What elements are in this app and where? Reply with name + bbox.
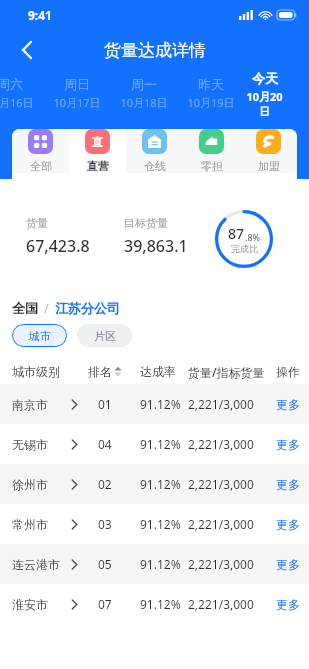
button[interactable]: 片区 (77, 324, 132, 347)
staticText: 直营 (87, 159, 109, 173)
button[interactable]: 加盟 (240, 129, 297, 173)
staticText: 39,863.1 (124, 235, 188, 257)
staticText: 03 (98, 516, 112, 532)
staticText: 67,423.8 (26, 235, 90, 257)
staticText: 91.12% (140, 476, 181, 492)
button[interactable]: 无锡市 (0, 424, 309, 464)
staticText: 周一 (131, 76, 157, 92)
staticText: 排名 (88, 364, 112, 379)
staticText: 91.12% (140, 596, 181, 612)
staticText: 2,221/3,000 (188, 436, 254, 452)
staticText: 05 (98, 556, 112, 572)
button[interactable]: 更多 (276, 517, 300, 532)
staticText: 2,221/3,000 (188, 396, 254, 412)
button[interactable]: 全国 (12, 300, 38, 316)
button[interactable]: 更多 (276, 437, 300, 452)
staticText: 昨天 (198, 76, 224, 92)
other: Expand 南京市 (66, 396, 82, 412)
other: Expand 无锡市 (66, 436, 82, 452)
staticText: 10月16日 (0, 95, 34, 110)
other: Expand 淮安市 (66, 596, 82, 612)
staticText: 更多 (276, 517, 300, 532)
button[interactable]: 徐州市 (0, 464, 309, 504)
button[interactable]: 常州市 (0, 504, 309, 544)
button[interactable]: 今天 (244, 70, 285, 116)
staticText: 货量 (26, 216, 48, 230)
staticText: 城市 (29, 329, 51, 343)
button[interactable]: 更多 (276, 597, 300, 612)
staticText: 04 (98, 436, 112, 452)
staticText: 更多 (276, 597, 300, 612)
button[interactable]: 更多 (276, 397, 300, 412)
staticText: 今天 (252, 70, 278, 86)
staticText: 02 (98, 476, 112, 492)
other: Expand 徐州市 (66, 476, 82, 492)
button[interactable]: 直 (69, 129, 126, 173)
staticText: 全国 (12, 300, 38, 316)
staticText: 零担 (201, 159, 223, 173)
staticText: 连云港市 (12, 557, 60, 572)
staticText: 2,221/3,000 (188, 596, 254, 612)
staticText: 9:41 (28, 7, 52, 23)
staticText: 淮安市 (12, 597, 48, 612)
staticText: 91.12% (140, 556, 181, 572)
button[interactable]: 周日 (43, 76, 110, 110)
staticText: 全部 (30, 159, 52, 173)
staticText: 城市级别 (12, 364, 60, 379)
button[interactable]: 周一 (110, 76, 177, 110)
button[interactable]: 更多 (276, 557, 300, 572)
staticText: 更多 (276, 557, 300, 572)
staticText: .8% (245, 231, 261, 243)
staticText: 2,221/3,000 (188, 476, 254, 492)
staticText: 江苏分公司 (55, 300, 120, 316)
button[interactable]: 昨天 (177, 76, 244, 110)
staticText: 货量达成详情 (104, 40, 206, 61)
staticText: 91.12% (140, 396, 181, 412)
staticText: 加盟 (258, 159, 280, 173)
staticText: 完成比 (231, 243, 258, 254)
staticText: 2,221/3,000 (188, 516, 254, 532)
button[interactable]: 连云港市 (0, 544, 309, 584)
button[interactable]: 江苏分公司 (55, 300, 120, 316)
staticText: 07 (98, 596, 112, 612)
staticText: 操作 (276, 364, 300, 379)
staticText: 10月20日 (244, 89, 285, 116)
staticText: 直 (92, 135, 103, 149)
staticText: 常州市 (12, 517, 48, 532)
button[interactable]: 排名 (88, 364, 122, 379)
staticText: 91.12% (140, 516, 181, 532)
staticText: 仓线 (144, 159, 166, 173)
button[interactable]: 仓线 (126, 129, 183, 173)
staticText: 10月17日 (53, 95, 101, 110)
button[interactable]: 周六 (0, 76, 43, 110)
staticText: 10月18日 (120, 95, 168, 110)
other: Expand 连云港市 (66, 556, 82, 572)
staticText: 10月19日 (187, 95, 235, 110)
staticText: 更多 (276, 477, 300, 492)
other: Expand 常州市 (66, 516, 82, 532)
staticText: 更多 (276, 397, 300, 412)
staticText: 2,221/3,000 (188, 556, 254, 572)
button[interactable]: 全部 (12, 129, 69, 173)
staticText: / (38, 300, 55, 316)
staticText: 徐州市 (12, 477, 48, 492)
staticText: 达成率 (140, 364, 176, 379)
button[interactable]: 零担 (183, 129, 240, 173)
button[interactable]: 南京市 (0, 384, 309, 424)
staticText: 南京市 (12, 397, 48, 412)
staticText: 更多 (276, 437, 300, 452)
staticText: 91.12% (140, 436, 181, 452)
button[interactable]: 城市 (12, 324, 67, 347)
staticText: 货量/指标货量 (188, 364, 265, 380)
button[interactable]: 更多 (276, 477, 300, 492)
staticText: 周六 (0, 76, 23, 92)
button[interactable]: 淮安市 (0, 584, 309, 624)
staticText: 片区 (94, 329, 116, 343)
staticText: 87 (228, 224, 245, 243)
staticText: 目标货量 (124, 216, 168, 230)
staticText: 周日 (64, 76, 90, 92)
staticText: 01 (98, 396, 112, 412)
staticText: 无锡市 (12, 437, 48, 452)
button[interactable]: Back (10, 33, 44, 67)
